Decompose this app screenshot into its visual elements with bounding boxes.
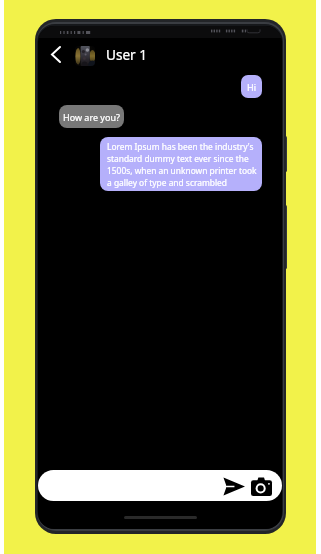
staticText: How are you?: [63, 111, 120, 123]
button[interactable]: Send: [222, 476, 245, 496]
staticText: User 1: [106, 45, 148, 64]
button[interactable]: Lorem Ipsum has been the industry's stan…: [100, 137, 262, 191]
button[interactable]: Send: [38, 470, 282, 501]
button[interactable]: How are you?: [59, 105, 124, 128]
staticText: Hi: [247, 81, 256, 93]
staticText: Lorem Ipsum has been the industry's stan…: [107, 141, 258, 188]
button[interactable]: Camera: [250, 476, 272, 496]
button[interactable]: Back: [46, 44, 66, 64]
button[interactable]: Hi: [241, 75, 262, 98]
